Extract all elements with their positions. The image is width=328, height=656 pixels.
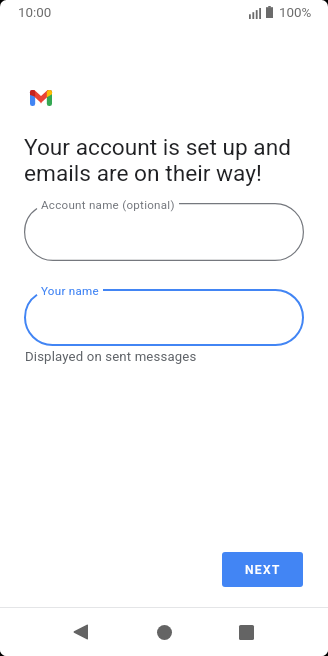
staticText: 10:00: [18, 5, 52, 21]
staticText: Your account is set up and emails are on…: [24, 134, 306, 186]
button[interactable]: Home: [140, 616, 188, 648]
button[interactable]: Recent apps: [222, 616, 270, 648]
staticText: NEXT: [245, 563, 281, 577]
staticText: Displayed on sent messages: [25, 349, 197, 364]
button[interactable]: [24, 289, 304, 346]
button[interactable]: Back: [56, 616, 104, 648]
button[interactable]: NEXT: [222, 552, 303, 587]
staticText: 100%: [279, 5, 312, 21]
button[interactable]: [24, 203, 304, 261]
